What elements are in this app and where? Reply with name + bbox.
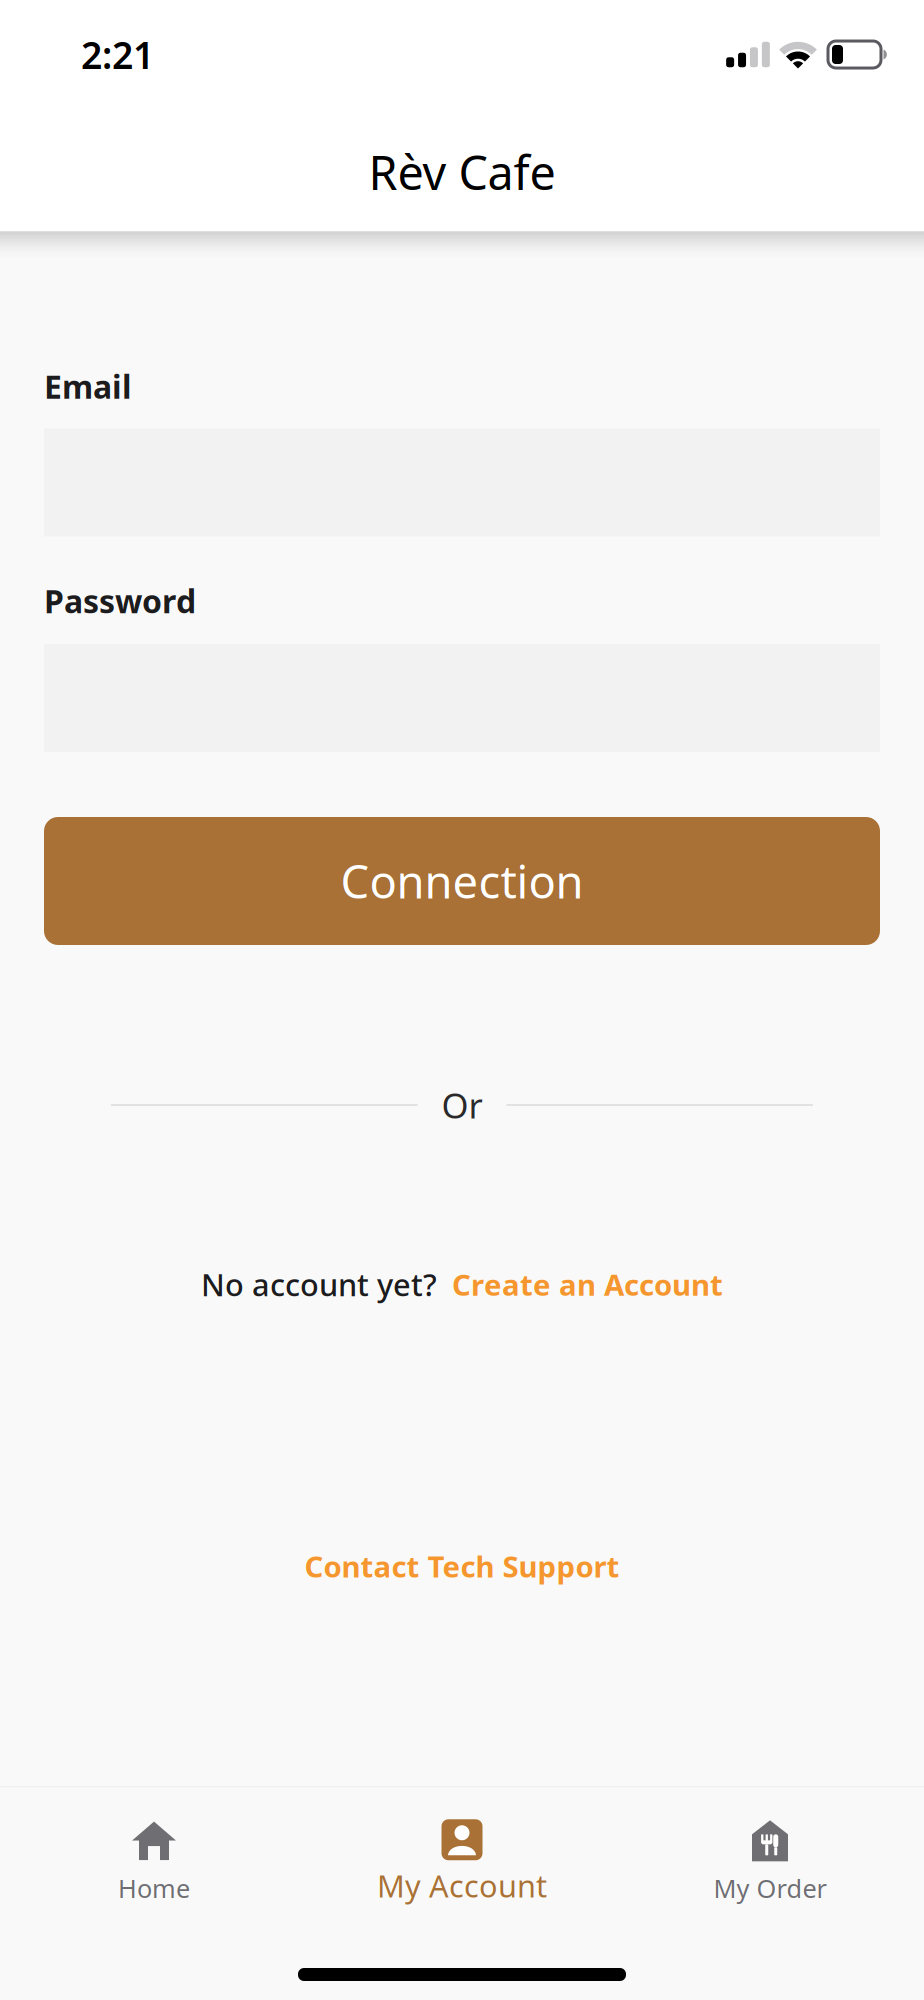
staticText: Password <box>44 579 196 622</box>
staticText: Home <box>118 1871 190 1905</box>
staticText: Email <box>44 365 132 407</box>
button[interactable]: Contact Tech Support <box>304 1547 619 1586</box>
button[interactable]: My Account <box>308 1819 616 1906</box>
staticText: My Order <box>713 1871 826 1905</box>
staticText: Contact Tech Support <box>304 1547 619 1586</box>
staticText: 2:21 <box>81 30 154 79</box>
staticText: No account yet? <box>201 1264 437 1305</box>
staticText: Rèv Cafe <box>368 141 555 203</box>
button[interactable]: Home <box>0 1820 308 1905</box>
staticText: Connection <box>340 851 583 911</box>
staticText: Or <box>441 1082 482 1128</box>
button[interactable]: Create an Account <box>452 1265 723 1304</box>
staticText: Create an Account <box>452 1265 723 1304</box>
button[interactable]: Connection <box>44 817 880 945</box>
staticText: My Account <box>377 1865 547 1906</box>
button[interactable]: My Order <box>616 1820 924 1905</box>
